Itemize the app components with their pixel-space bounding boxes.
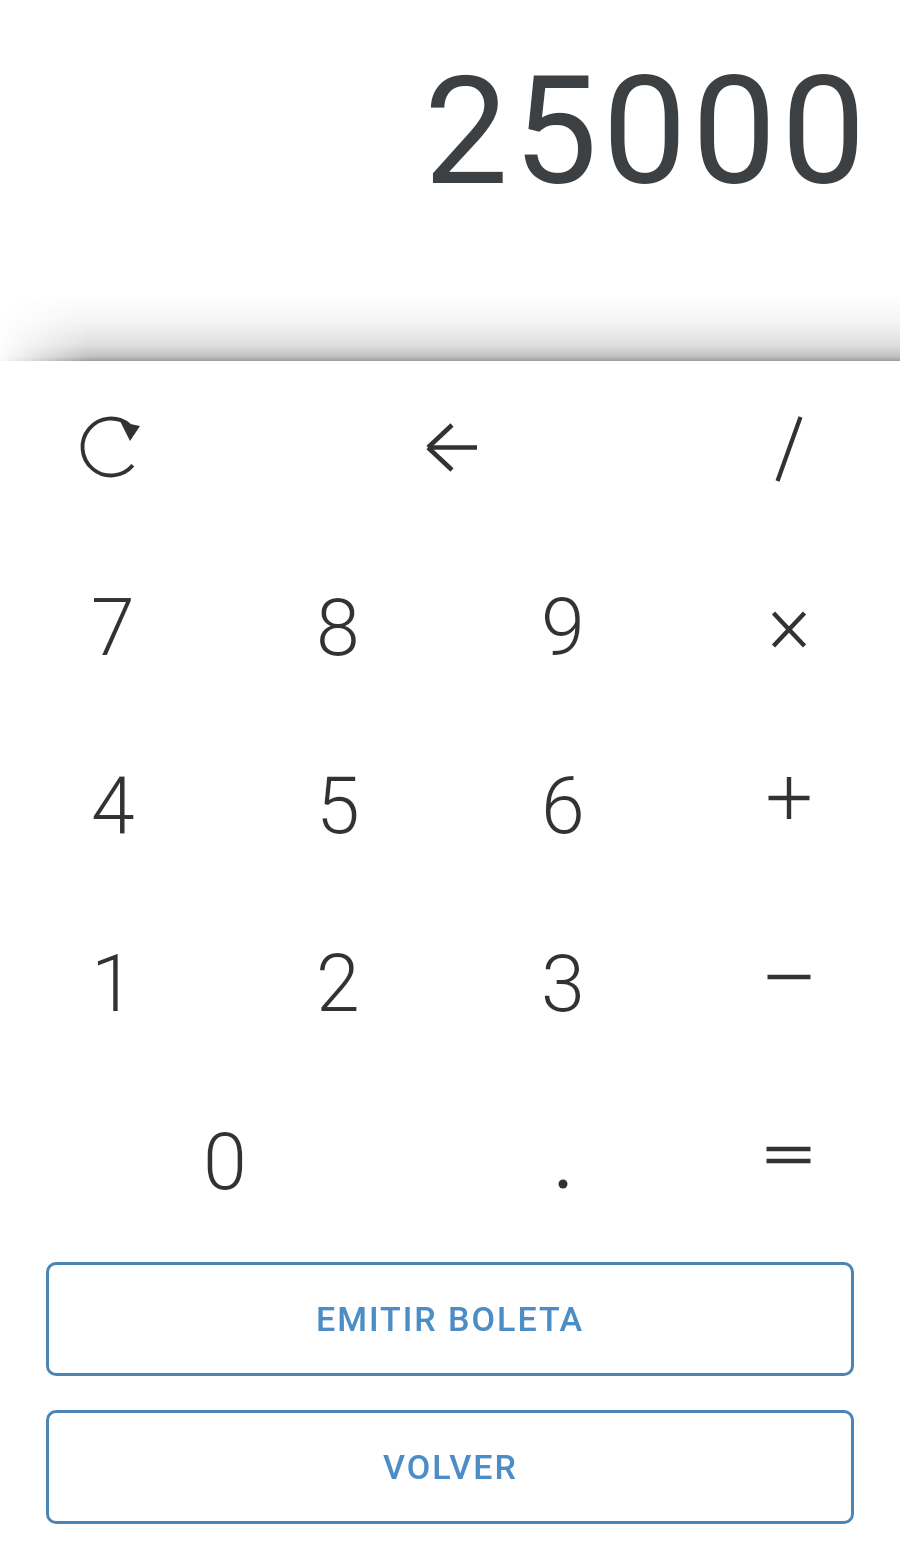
button[interactable]: 1 — [0, 895, 225, 1073]
staticText: 0 — [203, 1116, 247, 1209]
button[interactable] — [675, 717, 900, 895]
staticText: 25000 — [424, 44, 871, 220]
staticText: 1 — [91, 938, 135, 1031]
staticText: VOLVER — [383, 1447, 518, 1487]
staticText: EMITIR BOLETA — [316, 1299, 585, 1339]
staticText: 7 — [91, 582, 135, 675]
staticText: 3 — [541, 938, 585, 1031]
button[interactable]: 7 — [0, 539, 225, 717]
button[interactable]: 9 — [450, 539, 675, 717]
button[interactable] — [675, 895, 900, 1073]
button[interactable]: 4 — [0, 717, 225, 895]
button[interactable] — [0, 361, 225, 539]
button[interactable]: VOLVER — [46, 1410, 854, 1524]
button[interactable]: 5 — [225, 717, 450, 895]
button[interactable] — [675, 361, 900, 539]
button[interactable] — [675, 1073, 900, 1251]
staticText: 6 — [541, 760, 585, 853]
staticText: 5 — [316, 760, 360, 853]
button[interactable]: 2 — [225, 895, 450, 1073]
button[interactable]: 0 — [0, 1073, 450, 1251]
button[interactable] — [225, 361, 675, 539]
button[interactable]: 6 — [450, 717, 675, 895]
staticText: 2 — [316, 938, 360, 1031]
staticText: 4 — [91, 760, 135, 853]
staticText: 9 — [541, 582, 585, 675]
button[interactable]: 8 — [225, 539, 450, 717]
staticText: 8 — [316, 582, 360, 675]
button[interactable] — [675, 539, 900, 717]
button[interactable]: 3 — [450, 895, 675, 1073]
button[interactable]: EMITIR BOLETA — [46, 1262, 854, 1376]
button[interactable] — [450, 1073, 675, 1251]
